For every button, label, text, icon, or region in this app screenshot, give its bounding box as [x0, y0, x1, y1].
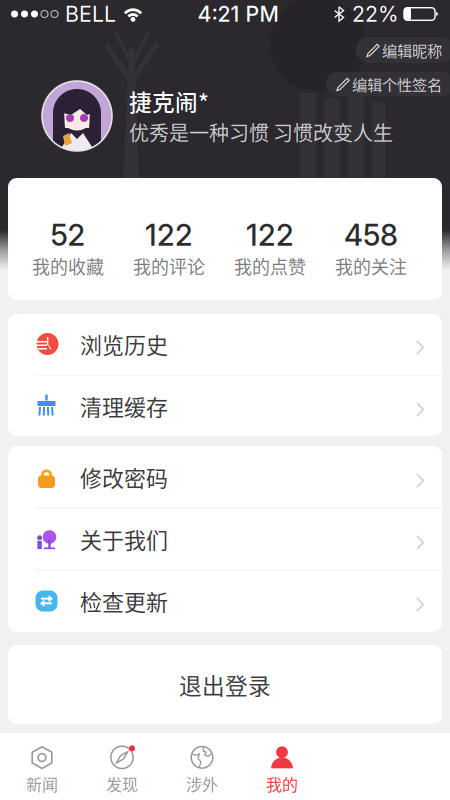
- button[interactable]: 清理缓存: [8, 375, 442, 436]
- staticText: 我的点赞: [234, 253, 306, 279]
- staticText: 4:21 PM: [197, 1, 278, 27]
- staticText: 修改密码: [80, 461, 168, 493]
- staticText: 清理缓存: [80, 390, 168, 422]
- staticText: 122: [246, 217, 294, 253]
- staticText: 发现: [106, 772, 138, 795]
- button[interactable]: 122: [219, 178, 320, 300]
- button[interactable]: 编辑个性签名: [326, 72, 450, 96]
- button[interactable]: 458: [320, 178, 421, 300]
- staticText: 编辑个性签名: [352, 73, 442, 95]
- staticText: 52: [50, 217, 85, 253]
- staticText: 新闻: [26, 772, 58, 795]
- staticText: 我的评论: [133, 253, 205, 279]
- button[interactable]: 关于我们: [8, 508, 442, 569]
- button[interactable]: 新闻: [2, 732, 82, 800]
- button[interactable]: 退出登录: [8, 645, 442, 724]
- staticText: 浏览历史: [80, 328, 168, 360]
- button[interactable]: 涉外: [162, 732, 242, 800]
- staticText: 122: [145, 217, 193, 253]
- button[interactable]: 修改密码: [8, 446, 442, 507]
- staticText: 我的: [266, 772, 298, 795]
- button[interactable]: 发现: [82, 732, 162, 800]
- button[interactable]: 122: [118, 178, 219, 300]
- staticText: 编辑昵称: [382, 39, 442, 61]
- button[interactable]: 52: [17, 178, 118, 300]
- button[interactable]: 浏览历史: [8, 313, 442, 374]
- staticText: BELL: [65, 1, 116, 27]
- staticText: 检查更新: [80, 585, 168, 617]
- staticText: 捷克闹*: [129, 85, 209, 117]
- button[interactable]: 检查更新: [8, 570, 442, 631]
- staticText: 458: [344, 217, 398, 253]
- staticText: 涉外: [186, 772, 218, 795]
- staticText: 关于我们: [80, 523, 168, 555]
- staticText: 优秀是一种习惯 习惯改变人生: [129, 117, 393, 146]
- button[interactable]: 我的: [242, 732, 322, 800]
- staticText: 退出登录: [179, 668, 271, 701]
- staticText: 我的关注: [335, 253, 407, 279]
- staticText: 22%: [352, 1, 399, 27]
- staticText: 我的收藏: [32, 253, 104, 279]
- button[interactable]: 编辑昵称: [356, 37, 450, 63]
